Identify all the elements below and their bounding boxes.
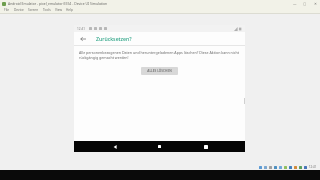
button[interactable]: Tools — [43, 8, 51, 12]
button[interactable]: Tray icon — [294, 166, 297, 169]
staticText: File — [4, 8, 10, 12]
button[interactable]: Window control — [310, 0, 320, 7]
button[interactable]: Tray icon — [284, 166, 287, 169]
button[interactable]: Tray icon — [274, 166, 277, 169]
button[interactable]: ALLES LÖSCHEN — [141, 67, 178, 75]
staticText: View — [55, 8, 62, 12]
button[interactable]: Home — [154, 141, 165, 152]
button[interactable]: Window control — [300, 0, 310, 7]
staticText: Screen — [28, 8, 39, 12]
button[interactable]: Back — [78, 34, 88, 44]
button[interactable]: View — [55, 8, 62, 12]
button[interactable]: Tray icon — [279, 166, 282, 169]
staticText: Tools — [43, 8, 51, 12]
staticText: Zurücksetzen? — [96, 35, 132, 42]
button[interactable]: Help — [66, 8, 73, 12]
button[interactable]: Tray icon — [289, 166, 292, 169]
staticText: 12:41 — [77, 27, 86, 31]
button[interactable]: Back — [109, 141, 120, 152]
button[interactable]: Device — [14, 8, 24, 12]
staticText: — — [293, 1, 297, 6]
staticText: Android Emulator - pixel_emulator:5554 -… — [8, 1, 108, 6]
button[interactable]: Tray icon — [304, 166, 307, 169]
staticText: 12:41 — [309, 165, 317, 169]
button[interactable]: Tray icon — [264, 166, 267, 169]
staticText: Alle personenbezogenen Daten und herunte… — [79, 50, 240, 60]
button[interactable]: Tray icon — [259, 166, 262, 169]
button[interactable]: Window control — [290, 0, 300, 7]
staticText: Device — [14, 8, 24, 12]
button[interactable]: Screen — [28, 8, 39, 12]
staticText: ✕ — [314, 2, 317, 6]
button[interactable]: File — [4, 8, 10, 12]
staticText: Help — [66, 8, 73, 12]
button[interactable]: Tray icon — [299, 166, 302, 169]
button[interactable]: Tray icon — [269, 166, 272, 169]
button[interactable]: Recent apps — [200, 141, 211, 152]
staticText: ▢ — [303, 2, 307, 6]
staticText: ALLES LÖSCHEN — [147, 69, 172, 73]
